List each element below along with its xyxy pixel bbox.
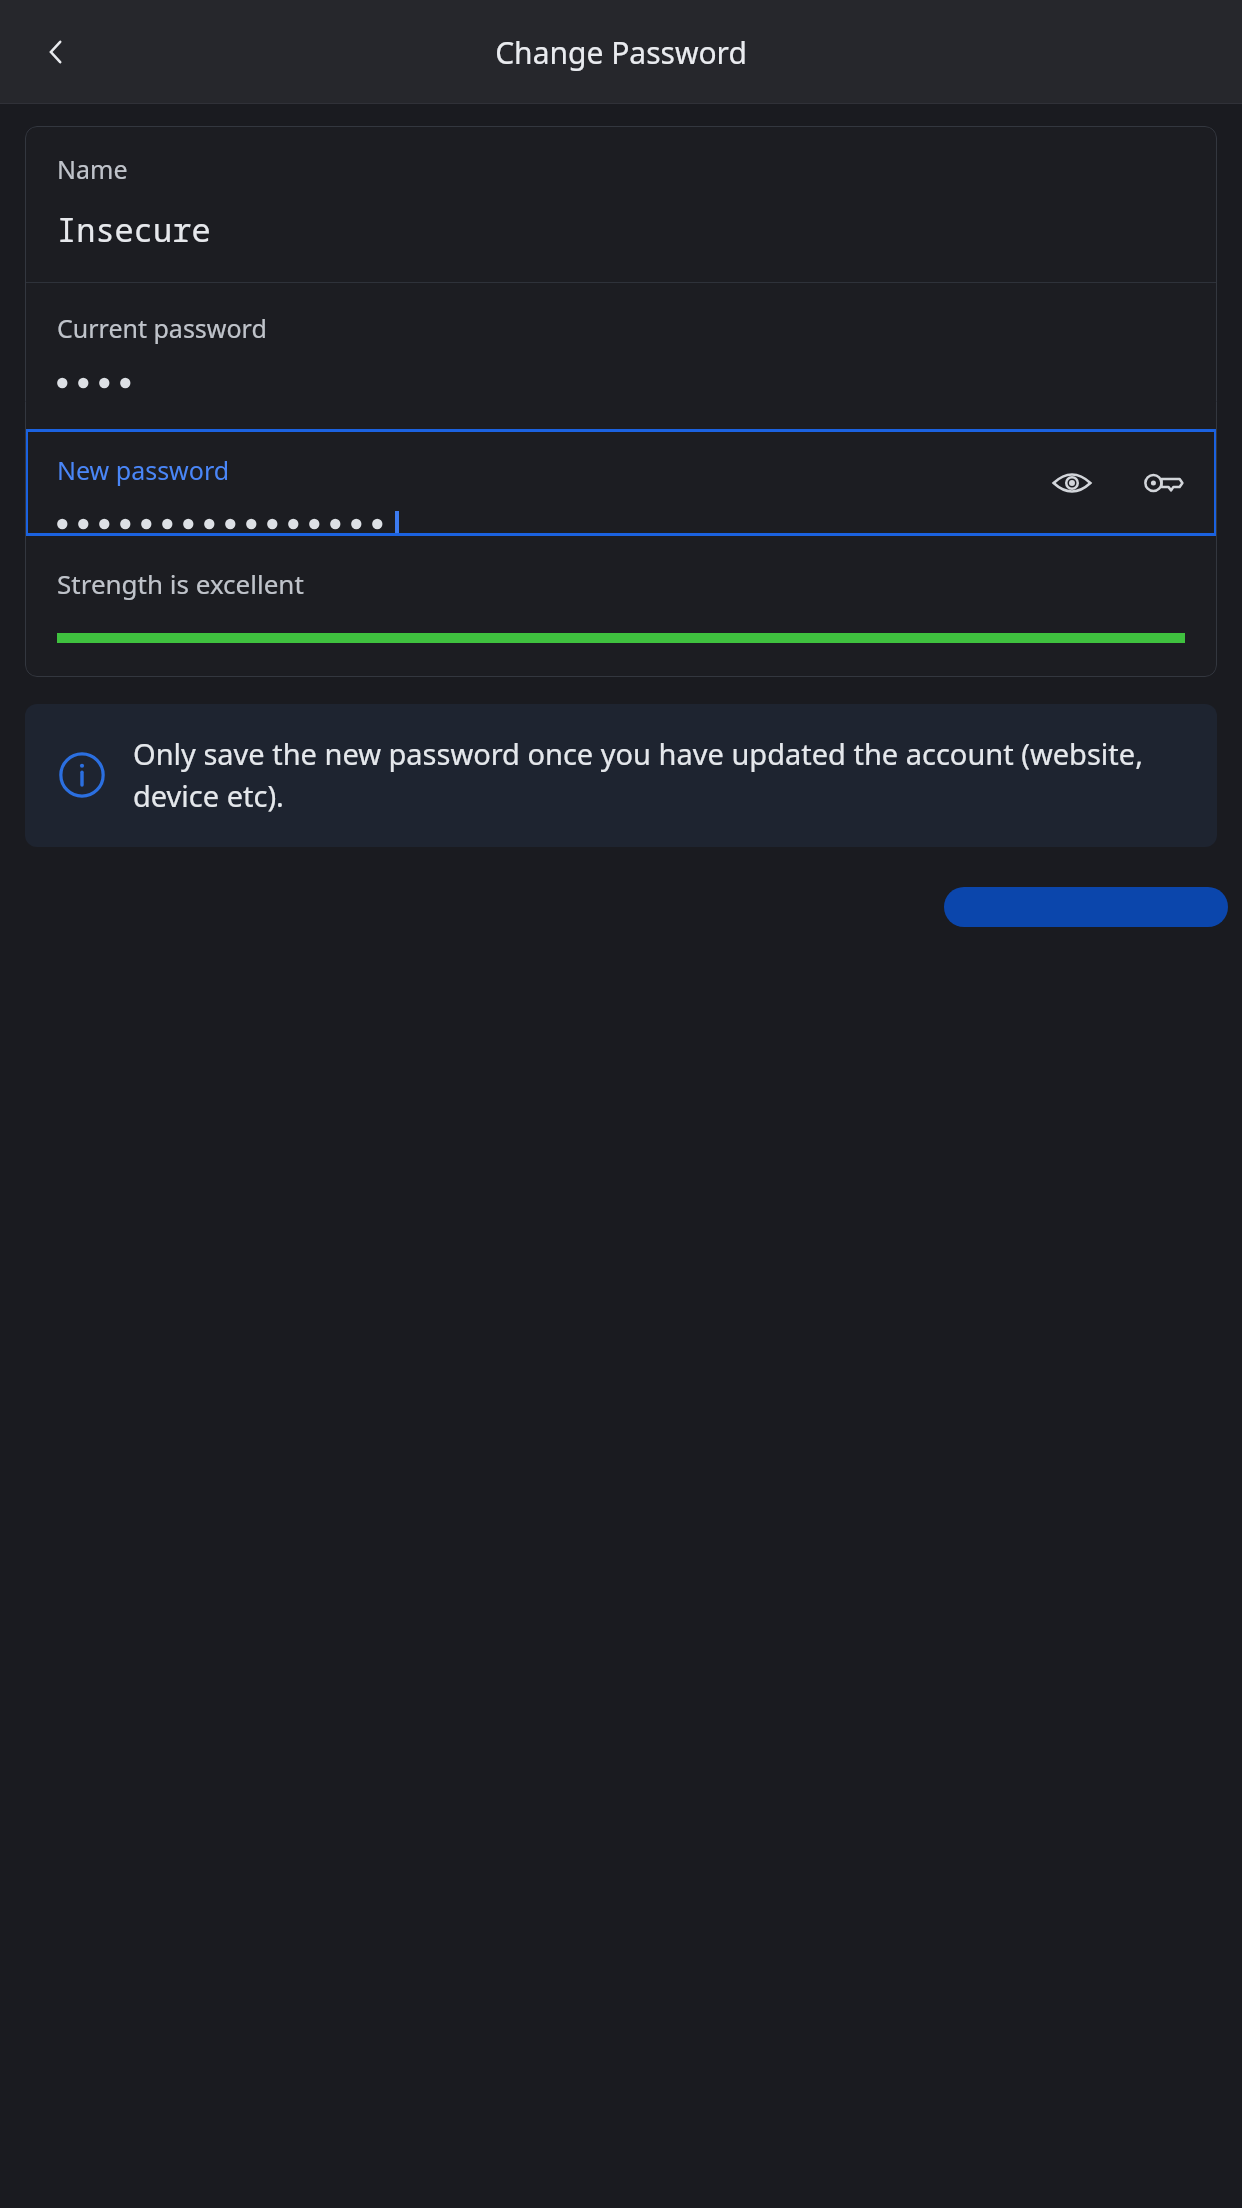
button[interactable] (944, 887, 1228, 927)
staticText: New password (57, 453, 230, 487)
staticText: Name (57, 152, 128, 186)
staticText: Current password (57, 311, 267, 345)
button[interactable]: Strength is excellent (25, 536, 1217, 677)
button[interactable]: Current password (25, 283, 1217, 429)
button[interactable]: Back (28, 24, 84, 80)
button[interactable]: Generate password (1133, 452, 1195, 514)
button[interactable]: New password (25, 429, 1217, 536)
staticText: Strength is excellent (57, 566, 304, 601)
staticText: Insecure (57, 208, 211, 252)
staticText: Only save the new password once you have… (133, 734, 1187, 815)
button[interactable]: Name (25, 126, 1217, 282)
button[interactable]: Show password (1041, 452, 1103, 514)
staticText: Change Password (495, 32, 747, 73)
button[interactable]: Only save the new password once you have… (25, 704, 1217, 847)
